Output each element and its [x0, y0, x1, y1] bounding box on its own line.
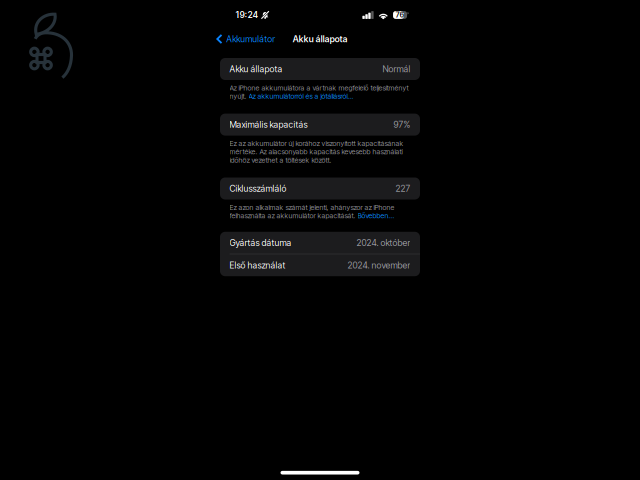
button[interactable]: Ciklusszámláló — [220, 177, 420, 199]
staticText: Ez azon alkalmak számát jelenti, ahánysz… — [230, 203, 395, 212]
staticText: 76 — [396, 11, 405, 19]
staticText: 97% — [393, 119, 410, 130]
staticText: 2024. október — [356, 237, 410, 248]
button[interactable]: Akku állapota — [220, 58, 420, 80]
staticText: Az iPhone akkumulátora a vártnak megfele… — [230, 84, 409, 92]
staticText: Ciklusszámláló — [230, 183, 287, 194]
staticText: Akku állapota — [230, 64, 283, 74]
staticText: Gyártás dátuma — [230, 237, 292, 248]
staticText: Az akkumulátorról és a jótállásról... — [249, 92, 354, 100]
staticText: Ez az akkumulátor új korához viszonyítot… — [230, 139, 404, 148]
staticText: nyújt. — [230, 92, 249, 100]
staticText: 2024. november — [347, 260, 410, 270]
staticText: Maximális kapacitás — [230, 119, 308, 130]
button[interactable]: Akkumulátor — [209, 30, 280, 48]
button[interactable]: Gyártás dátuma — [220, 232, 420, 254]
staticText: 227 — [395, 183, 410, 194]
staticText: Első használat — [230, 260, 286, 270]
staticText: felhasználta az akkumulátor kapacitását. — [230, 211, 358, 220]
button[interactable]: Maximális kapacitás — [220, 114, 420, 136]
staticText: Akku állapota — [292, 34, 347, 44]
staticText: 19:24 — [235, 10, 258, 20]
staticText: Bővebben... — [358, 211, 395, 220]
staticText: Akkumulátor — [226, 34, 275, 44]
staticText: Normál — [382, 64, 410, 74]
button[interactable]: Első használat — [220, 254, 420, 276]
staticText: időhöz vezethet a töltések között. — [230, 156, 332, 164]
staticText: mértéke. Az alacsonyabb kapacitás kevese… — [230, 147, 403, 156]
